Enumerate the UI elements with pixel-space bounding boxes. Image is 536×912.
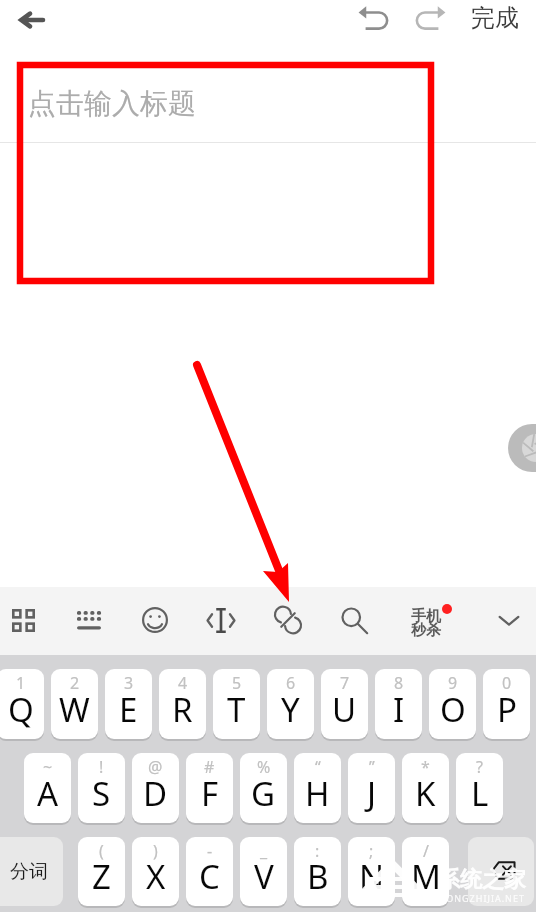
button[interactable]: 5 — [213, 669, 260, 739]
button[interactable]: Emoji — [131, 596, 179, 644]
staticText: J — [367, 771, 377, 816]
staticText: 2 — [70, 672, 80, 694]
staticText: 完成 — [471, 3, 519, 33]
staticText: Q — [8, 687, 34, 732]
button[interactable]: / — [402, 837, 449, 906]
button[interactable]: Link — [264, 596, 312, 644]
button[interactable]: “ — [294, 753, 341, 823]
staticText: % — [257, 756, 271, 778]
staticText: * — [421, 756, 430, 778]
staticText: N — [359, 854, 385, 899]
button[interactable]: ? — [456, 753, 503, 823]
staticText: ” — [369, 756, 375, 778]
staticText: ) — [153, 840, 158, 862]
button[interactable]: - — [186, 837, 233, 906]
button[interactable]: ~ — [24, 753, 71, 823]
staticText: T — [227, 687, 246, 732]
staticText: S — [92, 771, 111, 816]
button[interactable]: 0 — [483, 669, 530, 739]
staticText: W — [59, 687, 90, 732]
staticText: H — [305, 771, 330, 816]
staticText: 分词 — [10, 860, 48, 884]
button[interactable]: 6 — [267, 669, 314, 739]
staticText: I — [393, 687, 405, 732]
staticText: A — [37, 771, 59, 816]
button[interactable]: 7 — [321, 669, 368, 739]
staticText: X — [146, 854, 166, 899]
button[interactable]: 2 — [51, 669, 98, 739]
staticText: R — [172, 687, 193, 732]
button[interactable]: ! — [78, 753, 125, 823]
staticText: ! — [99, 756, 104, 778]
staticText: ; — [369, 840, 374, 862]
staticText: 手机 秒杀 — [411, 607, 441, 639]
button[interactable]: Redo — [407, 0, 457, 45]
button[interactable]: # — [186, 753, 233, 823]
staticText: 点击输入标题 — [28, 86, 196, 121]
button[interactable]: ” — [348, 753, 395, 823]
button[interactable]: @ — [132, 753, 179, 823]
staticText: 9 — [448, 672, 458, 694]
staticText: B — [307, 854, 329, 899]
staticText: XITONGZHIJIA.NET — [430, 892, 525, 904]
staticText: 4 — [178, 672, 188, 694]
button[interactable]: Move cursor — [197, 596, 245, 644]
staticText: # — [204, 756, 215, 778]
button[interactable]: % — [240, 753, 287, 823]
staticText: D — [143, 771, 168, 816]
button[interactable]: Keyboard layout — [65, 596, 113, 644]
button[interactable]: 8 — [375, 669, 422, 739]
button[interactable]: * — [402, 753, 449, 823]
staticText: Y — [281, 687, 300, 732]
staticText: V — [254, 854, 274, 899]
staticText: @ — [148, 756, 163, 778]
staticText: F — [201, 771, 219, 816]
staticText: ? — [476, 756, 483, 778]
staticText: 6 — [286, 672, 296, 694]
staticText: 系统之家 — [438, 866, 526, 894]
button[interactable]: ( — [78, 837, 125, 906]
staticText: O — [440, 687, 466, 732]
button[interactable]: Back — [8, 0, 54, 43]
button[interactable]: Apps — [0, 596, 47, 644]
button[interactable]: Collapse keyboard — [485, 596, 533, 644]
staticText: E — [119, 687, 138, 732]
button[interactable]: 9 — [429, 669, 476, 739]
button[interactable]: _ — [240, 837, 287, 906]
staticText: C — [199, 854, 220, 899]
staticText: M — [411, 854, 441, 899]
button[interactable]: 手机 秒杀 — [396, 599, 456, 647]
staticText: ~ — [43, 756, 53, 778]
button[interactable]: 3 — [105, 669, 152, 739]
button[interactable]: 完成 — [459, 0, 531, 43]
staticText: Z — [92, 854, 111, 899]
button[interactable]: 4 — [159, 669, 206, 739]
staticText: L — [471, 771, 489, 816]
staticText: - — [207, 840, 213, 862]
staticText: 0 — [502, 672, 512, 694]
staticText: “ — [315, 756, 321, 778]
button[interactable]: 分词 — [0, 837, 63, 906]
button[interactable]: ; — [348, 837, 395, 906]
staticText: 5 — [232, 672, 242, 694]
button[interactable]: 1 — [0, 669, 44, 739]
button[interactable]: Search — [330, 596, 378, 644]
staticText: / — [423, 840, 429, 862]
staticText: _ — [260, 840, 268, 862]
staticText: 3 — [124, 672, 134, 694]
button[interactable]: : — [294, 837, 341, 906]
staticText: U — [332, 687, 357, 732]
staticText: 8 — [394, 672, 404, 694]
staticText: K — [415, 771, 436, 816]
staticText: ( — [99, 840, 104, 862]
button[interactable]: ) — [132, 837, 179, 906]
button[interactable]: Undo — [347, 0, 397, 45]
staticText: P — [497, 687, 517, 732]
staticText: 7 — [340, 672, 350, 694]
button[interactable]: Camera — [508, 424, 536, 472]
staticText: G — [251, 771, 276, 816]
staticText: 1 — [16, 672, 26, 694]
button[interactable]: Backspace — [468, 837, 534, 906]
staticText: : — [315, 840, 320, 862]
